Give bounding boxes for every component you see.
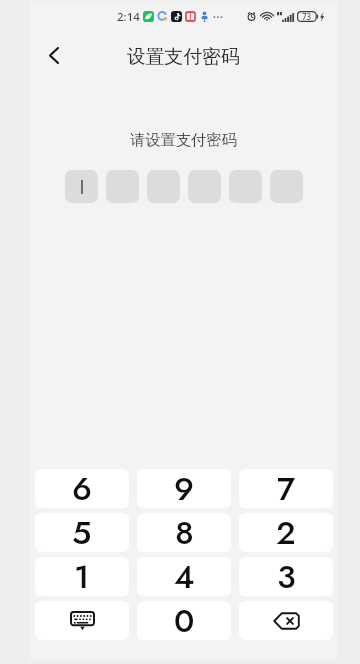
- staticText: 设置支付密码: [127, 45, 240, 69]
- staticText: 2: [276, 513, 296, 548]
- button[interactable]: [106, 170, 139, 203]
- button[interactable]: [229, 170, 262, 203]
- button[interactable]: 3: [239, 557, 333, 596]
- button[interactable]: Switch keyboard: [35, 601, 129, 640]
- staticText: 6: [72, 469, 92, 504]
- button[interactable]: 4: [137, 557, 231, 596]
- staticText: 1: [74, 557, 90, 592]
- staticText: 4: [174, 557, 195, 592]
- staticText: 5: [72, 513, 92, 548]
- staticText: 0: [174, 601, 195, 636]
- button[interactable]: Delete: [239, 601, 333, 640]
- button[interactable]: [188, 170, 221, 203]
- button[interactable]: 6: [35, 469, 129, 508]
- button[interactable]: 1: [35, 557, 129, 596]
- button[interactable]: 9: [137, 469, 231, 508]
- button[interactable]: [65, 170, 98, 203]
- button[interactable]: 0: [137, 601, 231, 640]
- staticText: 8: [175, 513, 194, 548]
- staticText: 2:14: [117, 9, 140, 25]
- staticText: 3: [277, 557, 296, 592]
- staticText: 7: [277, 469, 296, 504]
- staticText: 73: [302, 11, 312, 22]
- button[interactable]: 8: [137, 513, 231, 552]
- button[interactable]: Back: [38, 38, 70, 70]
- button[interactable]: 5: [35, 513, 129, 552]
- button[interactable]: 7: [239, 469, 333, 508]
- staticText: 9: [174, 469, 194, 504]
- button[interactable]: [147, 170, 180, 203]
- button[interactable]: [270, 170, 303, 203]
- button[interactable]: 2: [239, 513, 333, 552]
- staticText: 请设置支付密码: [30, 130, 337, 149]
